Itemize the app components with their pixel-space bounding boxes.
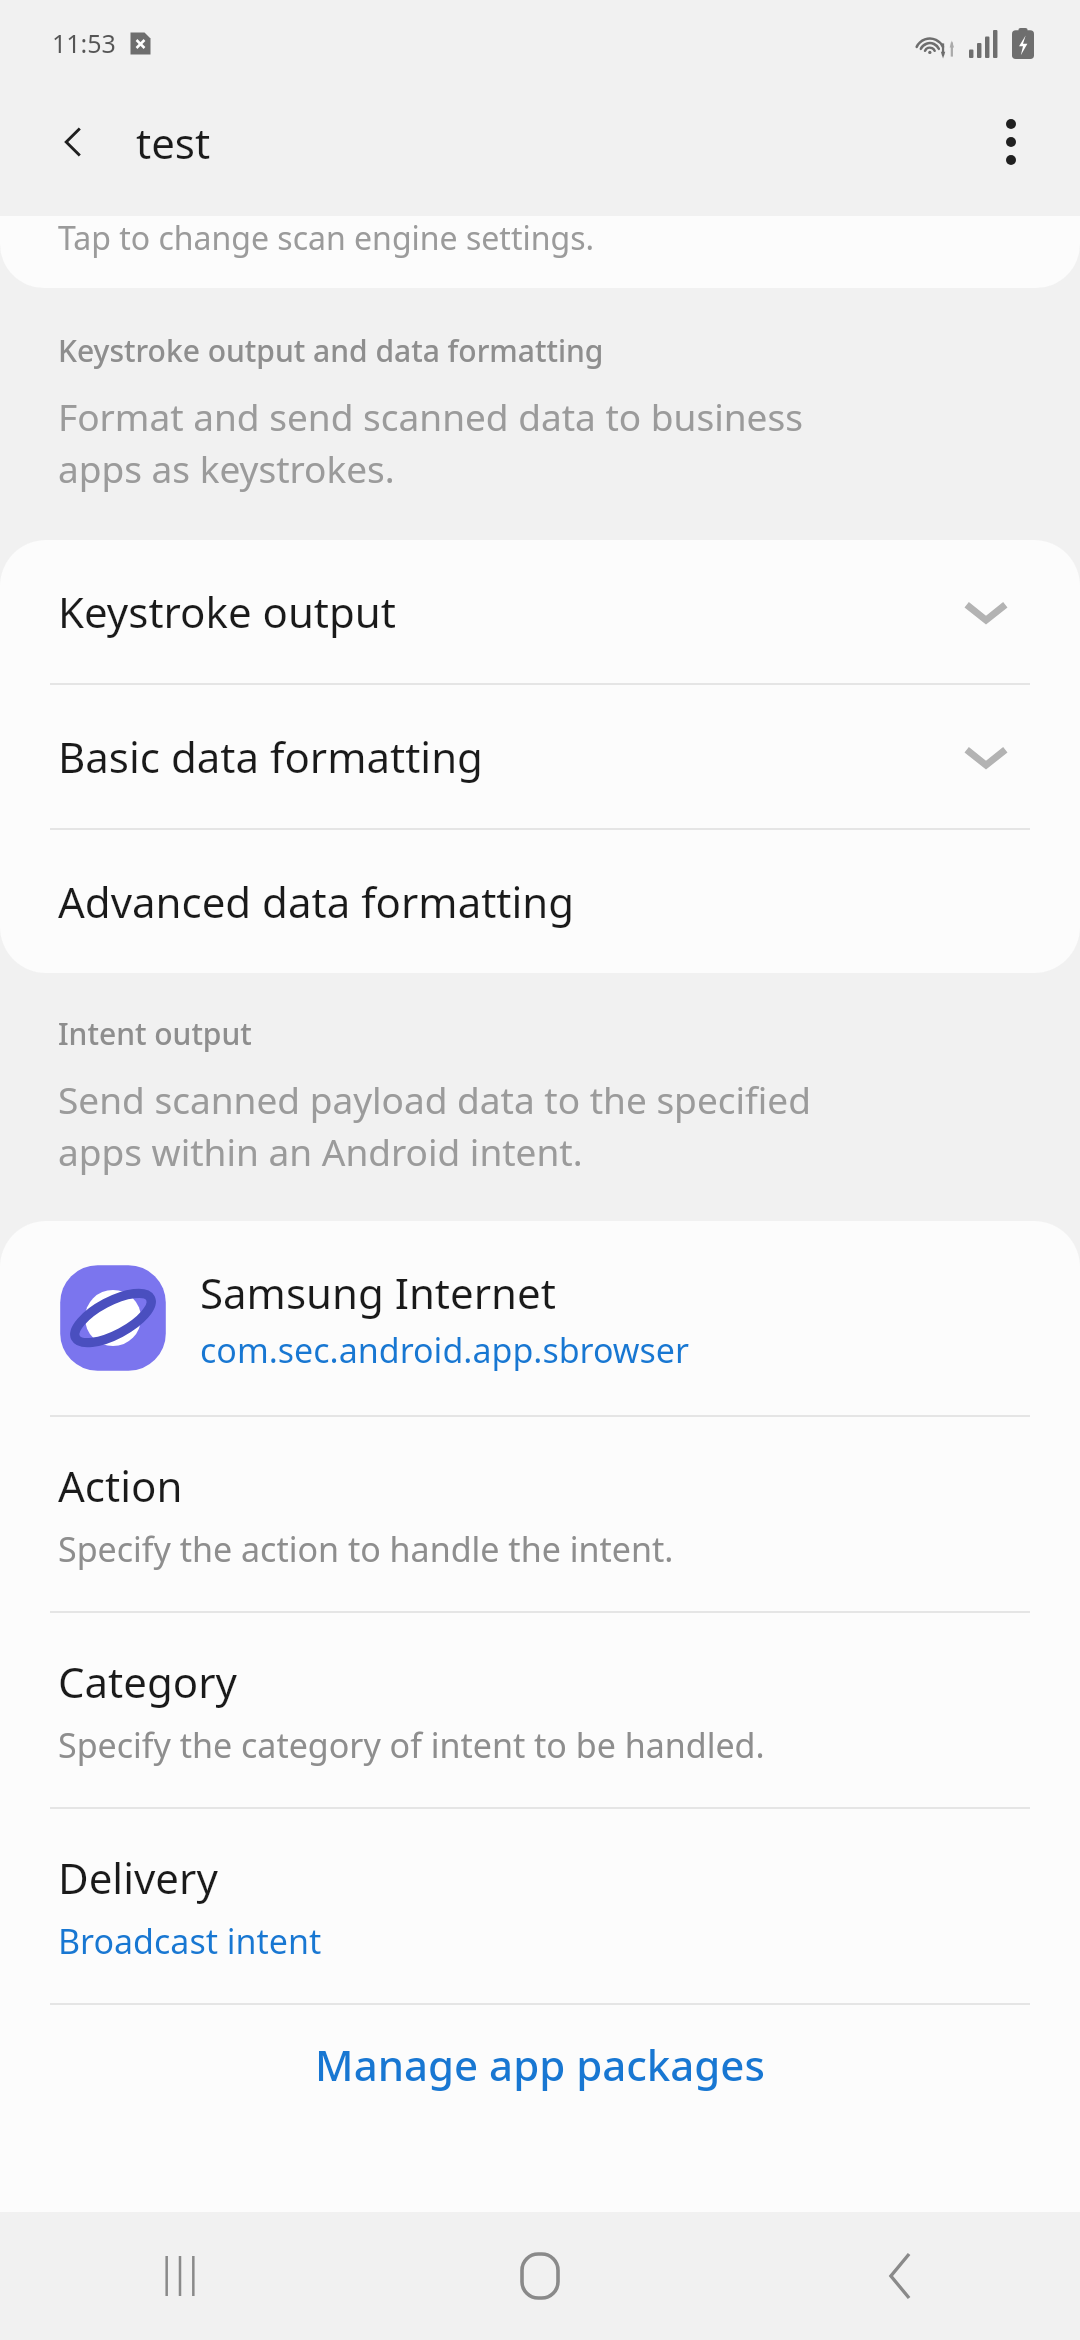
button[interactable]: Category: [0, 1613, 1080, 1807]
staticText: Format and send scanned data to business…: [58, 391, 803, 494]
button[interactable]: Basic data formatting: [0, 685, 1080, 828]
button[interactable]: Home: [360, 2212, 720, 2340]
staticText: Intent output: [58, 1013, 252, 1054]
staticText: Keystroke output: [58, 583, 396, 640]
button[interactable]: Tap to change scan engine settings.: [0, 216, 1080, 288]
staticText: Manage app packages: [315, 2036, 765, 2093]
staticText: Advanced data formatting: [58, 873, 575, 930]
staticText: Keystroke output and data formatting: [58, 330, 604, 371]
button[interactable]: Recent apps: [0, 2212, 360, 2340]
staticText: test: [136, 114, 211, 171]
button[interactable]: Back: [720, 2212, 1080, 2340]
staticText: Basic data formatting: [58, 728, 483, 785]
button[interactable]: Back: [34, 103, 112, 181]
staticText: Broadcast intent: [58, 1918, 322, 1964]
button[interactable]: Keystroke output: [0, 540, 1080, 683]
staticText: 11:53: [52, 26, 116, 60]
button[interactable]: Advanced data formatting: [0, 830, 1080, 973]
staticText: Send scanned payload data to the specifi…: [58, 1074, 811, 1177]
staticText: com.sec.android.app.sbrowser: [200, 1327, 690, 1373]
button[interactable]: Manage app packages: [0, 2005, 1080, 2123]
staticText: Specify the category of intent to be han…: [58, 1722, 765, 1768]
button[interactable]: Delivery: [0, 1809, 1080, 2003]
staticText: Category: [58, 1653, 237, 1710]
button[interactable]: More options: [972, 103, 1050, 181]
staticText: Action: [58, 1457, 183, 1514]
staticText: Delivery: [58, 1849, 218, 1906]
staticText: Samsung Internet: [200, 1264, 556, 1321]
staticText: Specify the action to handle the intent.: [58, 1526, 674, 1572]
button[interactable]: Samsung Internet: [0, 1221, 1080, 1415]
button[interactable]: Action: [0, 1417, 1080, 1611]
staticText: Tap to change scan engine settings.: [58, 216, 595, 260]
